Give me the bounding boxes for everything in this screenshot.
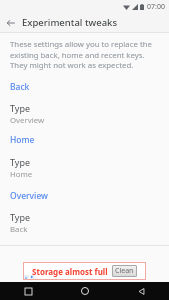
staticText: x (25, 275, 28, 279)
button[interactable]: Overview (0, 190, 169, 202)
staticText: Back (10, 81, 30, 93)
staticText: Overview (10, 115, 45, 126)
staticText: Experimental tweaks (22, 16, 118, 29)
button[interactable]: Recents (0, 282, 57, 300)
staticText: Type (10, 102, 31, 114)
button[interactable]: Home (57, 282, 113, 300)
staticText: Clean (115, 266, 134, 276)
staticText: 07:00 (147, 2, 165, 12)
other: Ad info (24, 275, 29, 279)
staticText: Home (10, 134, 35, 146)
staticText: Type (10, 211, 31, 223)
staticText: Overview (10, 190, 48, 202)
button[interactable]: Home (0, 134, 169, 146)
staticText: Home (10, 169, 33, 180)
button[interactable]: Storage almost full (23, 262, 146, 280)
button[interactable]: Type (0, 156, 169, 180)
staticText: These settings allow you to replace the … (10, 39, 159, 71)
staticText: Type (10, 156, 31, 168)
button[interactable]: Back (113, 282, 169, 300)
button[interactable]: Clean (112, 265, 137, 277)
staticText: Storage almost full (32, 266, 108, 277)
staticText: Back (10, 224, 28, 235)
button[interactable]: Back (0, 13, 22, 32)
button[interactable]: Back (0, 81, 169, 93)
button[interactable]: Type (0, 211, 169, 235)
button[interactable]: Type (0, 102, 169, 126)
